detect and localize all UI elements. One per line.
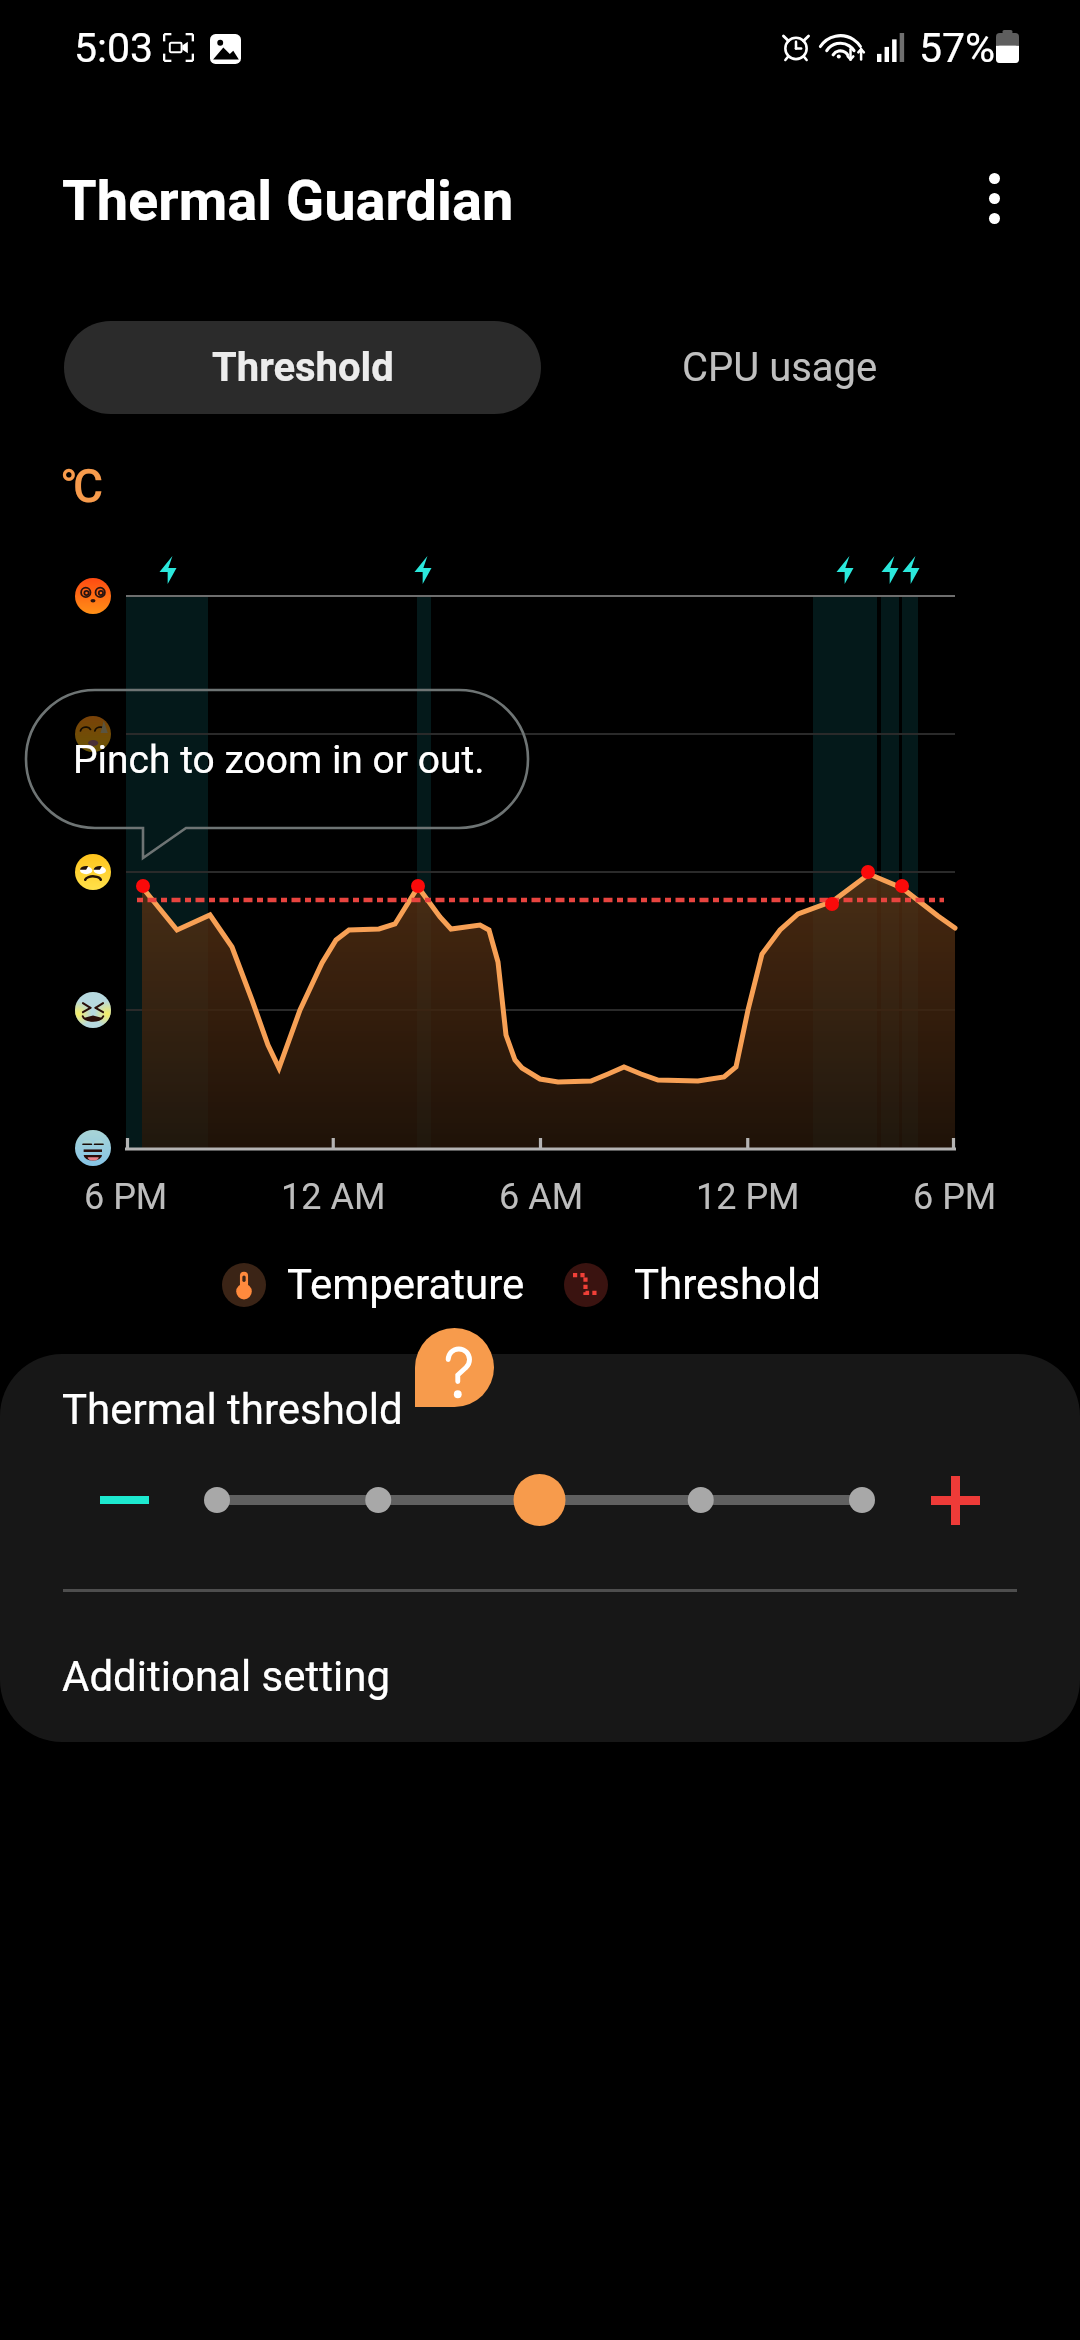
staticText: 57%	[919, 24, 996, 72]
staticText: 6 PM	[84, 1176, 168, 1218]
staticText: Temperature	[287, 1260, 525, 1309]
staticText: 12 AM	[281, 1176, 386, 1218]
button[interactable]: Threshold	[64, 321, 541, 414]
staticText: Additional setting	[62, 1652, 390, 1701]
button[interactable]: Increase threshold	[895, 1455, 1015, 1545]
button[interactable]: More options	[948, 152, 1040, 244]
staticText: Threshold	[634, 1260, 821, 1309]
staticText: Pinch to zoom in or out.	[73, 737, 485, 783]
button[interactable]: Decrease threshold	[64, 1455, 184, 1545]
staticText: CPU usage	[682, 344, 878, 391]
staticText: 12 PM	[696, 1176, 800, 1218]
staticText: Threshold	[212, 344, 394, 391]
staticText: 5:03	[74, 24, 154, 72]
button[interactable]: Additional setting	[0, 1610, 1080, 1742]
button[interactable]: CPU usage	[541, 321, 1018, 414]
button[interactable]: Help	[415, 1328, 494, 1407]
staticText: Thermal Guardian	[62, 168, 514, 234]
staticText: 6 PM	[913, 1176, 997, 1218]
staticText: ℃	[62, 459, 103, 513]
staticText: Thermal threshold	[62, 1385, 403, 1434]
staticText: 6 AM	[499, 1176, 584, 1218]
